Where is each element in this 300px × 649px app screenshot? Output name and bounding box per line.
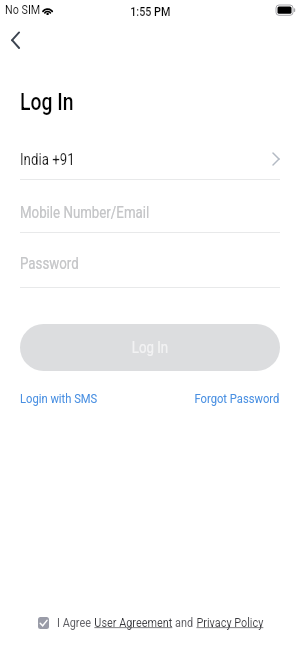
staticText: Log In bbox=[20, 88, 74, 115]
button[interactable]: Login with SMS bbox=[0, 0, 94, 16]
staticText: Log In bbox=[132, 338, 168, 357]
button[interactable]: India +91 bbox=[0, 146, 300, 172]
staticText: 1:55 PM bbox=[130, 4, 171, 19]
button[interactable]: Privacy Policy bbox=[196, 615, 264, 630]
button[interactable]: Back bbox=[2, 26, 32, 54]
staticText: Mobile Number/Email bbox=[20, 203, 149, 222]
button[interactable]: User Agreement bbox=[94, 615, 172, 630]
button[interactable]: Forgot Password bbox=[194, 390, 280, 406]
staticText: Password bbox=[20, 254, 79, 273]
staticText: I Agree bbox=[57, 615, 94, 630]
staticText: India +91 bbox=[20, 150, 75, 169]
staticText: No SIM bbox=[5, 2, 41, 17]
staticText: and bbox=[172, 615, 196, 630]
button[interactable]: I Agree checkbox bbox=[38, 617, 49, 629]
button[interactable]: Log In bbox=[20, 324, 280, 371]
